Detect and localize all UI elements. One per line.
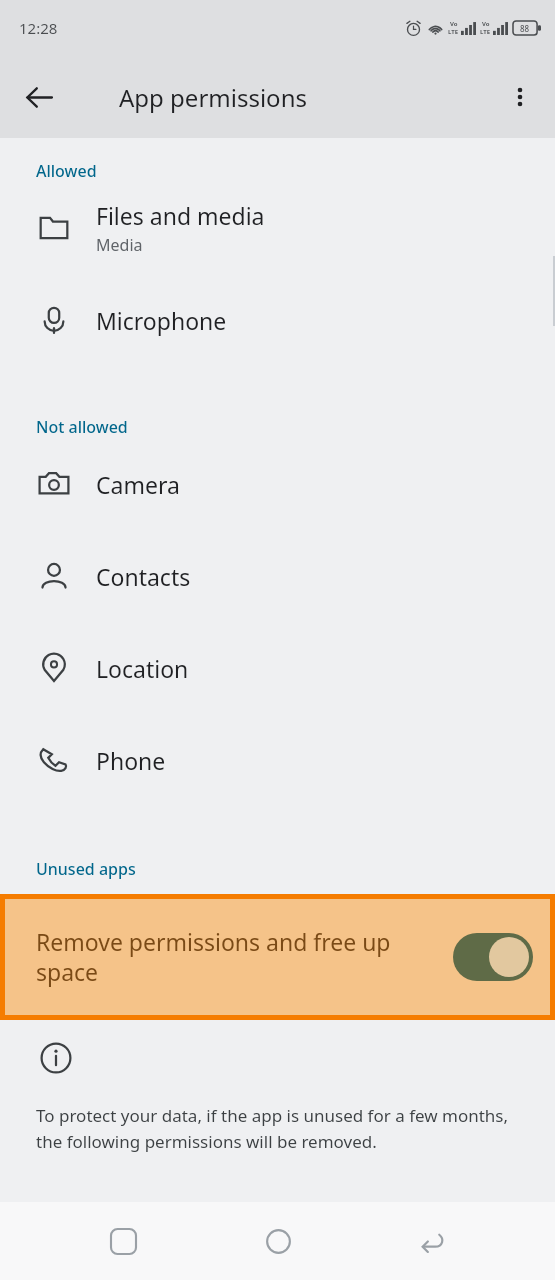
button[interactable]: Remove permissions toggle — [453, 933, 533, 981]
staticText: Vo — [482, 20, 490, 28]
button[interactable]: Location — [0, 622, 555, 714]
button[interactable]: Home — [246, 1209, 310, 1273]
staticText: LTE — [448, 28, 459, 36]
staticText: 88 — [520, 23, 530, 34]
staticText: Not allowed — [36, 416, 128, 438]
staticText: LTE — [480, 28, 491, 36]
staticText: Unused apps — [36, 858, 136, 880]
staticText: Contacts — [96, 561, 191, 592]
button[interactable]: Back — [400, 1209, 464, 1273]
button[interactable]: Phone — [0, 714, 555, 806]
staticText: 12:28 — [19, 18, 58, 38]
button[interactable]: Remove permissions and free up space — [0, 894, 555, 1020]
staticText: Allowed — [36, 160, 97, 182]
staticText: Location — [96, 653, 189, 684]
button[interactable]: Recent apps — [91, 1209, 155, 1273]
staticText: Vo — [450, 20, 458, 28]
staticText: Files and media — [96, 200, 265, 231]
button[interactable]: Contacts — [0, 530, 555, 622]
staticText: To protect your data, if the app is unus… — [36, 1104, 529, 1153]
button[interactable]: Back — [10, 68, 68, 126]
staticText: Media — [96, 234, 143, 256]
staticText: Remove permissions and free up space — [36, 926, 439, 988]
staticText: Phone — [96, 745, 166, 776]
button[interactable]: Files and media — [0, 182, 555, 274]
button[interactable]: Microphone — [0, 274, 555, 366]
button[interactable]: Camera — [0, 438, 555, 530]
staticText: App permissions — [119, 81, 307, 114]
button[interactable]: More options — [493, 70, 547, 124]
staticText: Camera — [96, 469, 180, 500]
staticText: Microphone — [96, 305, 227, 336]
